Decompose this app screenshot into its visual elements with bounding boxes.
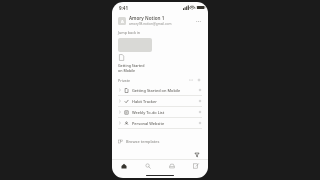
button[interactable]: Personal Website <box>118 118 202 128</box>
button[interactable]: A <box>118 15 202 26</box>
button[interactable]: New page <box>184 159 208 173</box>
button[interactable]: Home <box>112 159 136 173</box>
staticText: Amory Notion 1 <box>129 15 165 21</box>
staticText: Getting Started on Mobile <box>132 88 198 93</box>
button[interactable]: Weekly To-do List <box>118 107 202 117</box>
button[interactable]: Getting Started on Mobile <box>118 38 152 73</box>
button[interactable]: Search <box>136 159 160 173</box>
staticText: Private <box>118 78 131 83</box>
staticText: Habit Tracker <box>132 99 198 104</box>
button[interactable]: More <box>188 77 194 83</box>
staticText: Personal Website <box>132 121 198 126</box>
staticText: 9:41 <box>119 5 128 11</box>
staticText: Jump back in <box>118 30 141 35</box>
staticText: Getting Started on Mobile <box>118 63 145 73</box>
staticText: Browse templates <box>126 139 160 144</box>
button[interactable]: Filter <box>192 150 201 159</box>
staticText: A <box>121 19 124 24</box>
button[interactable]: Getting Started on Mobile <box>118 85 202 95</box>
button[interactable]: Browse templates <box>118 136 202 146</box>
button[interactable]: Add page <box>196 77 202 83</box>
staticText: Weekly To-do List <box>132 110 198 115</box>
button[interactable]: More options <box>194 17 202 25</box>
button[interactable]: Inbox <box>160 159 184 173</box>
button[interactable]: Habit Tracker <box>118 96 202 106</box>
staticText: amory98.notion@gmail.com <box>129 22 172 26</box>
